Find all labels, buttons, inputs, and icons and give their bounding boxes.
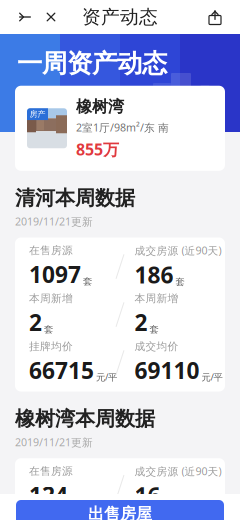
button[interactable]: 出售房屋 (16, 500, 224, 520)
staticText: 挂牌均价 (29, 340, 73, 353)
staticText: 套 (149, 324, 158, 335)
staticText: 186 (134, 260, 173, 290)
staticText: 在售房源 (29, 465, 73, 478)
staticText: 1097 (29, 259, 81, 289)
staticText: 69110 (134, 355, 199, 385)
staticText: 2019/11/21更新 (15, 435, 93, 449)
staticText: 清河本周数据 (15, 186, 135, 210)
staticText: 855万 (76, 139, 119, 160)
staticText: 橡树湾 (76, 97, 124, 116)
staticText: 本周新增 (134, 292, 178, 305)
staticText: 2室1厅/98m²/东 南 (76, 120, 169, 135)
staticText: 2019/11/21更新 (15, 214, 93, 229)
button[interactable]: 关闭 (38, 2, 64, 32)
staticText: 本周新增 (29, 292, 73, 305)
button[interactable]: 返回 (12, 2, 38, 32)
staticText: 2019/11/15-2019/11/21 (17, 84, 149, 100)
staticText: 套 (162, 497, 171, 508)
staticText: 在售房源 (29, 244, 73, 257)
staticText: 2 (134, 307, 147, 337)
staticText: 成交房源 (近90天) (134, 243, 221, 258)
staticText: 一周资产动态 (17, 48, 167, 79)
staticText: 套 (44, 324, 53, 335)
staticText: 出售房屋 (88, 504, 152, 520)
staticText: 成交房源 (近90天) (134, 464, 221, 478)
staticText: 66715 (29, 355, 94, 385)
staticText: 资产动态 (82, 5, 158, 28)
button[interactable]: 房产 (15, 86, 225, 171)
staticText: 成交均价 (134, 340, 178, 353)
staticText: 124 (29, 480, 68, 510)
staticText: 套 (175, 276, 184, 288)
staticText: 房产 (29, 109, 45, 119)
button[interactable]: 分享 (202, 2, 228, 32)
staticText: 套 (83, 276, 92, 287)
staticText: 16 (134, 480, 160, 510)
staticText: 套 (70, 496, 79, 508)
staticText: 元/平 (201, 371, 222, 383)
staticText: 橡树湾本周数据 (15, 406, 155, 431)
staticText: 2 (29, 307, 42, 337)
staticText: 元/平 (96, 371, 117, 383)
